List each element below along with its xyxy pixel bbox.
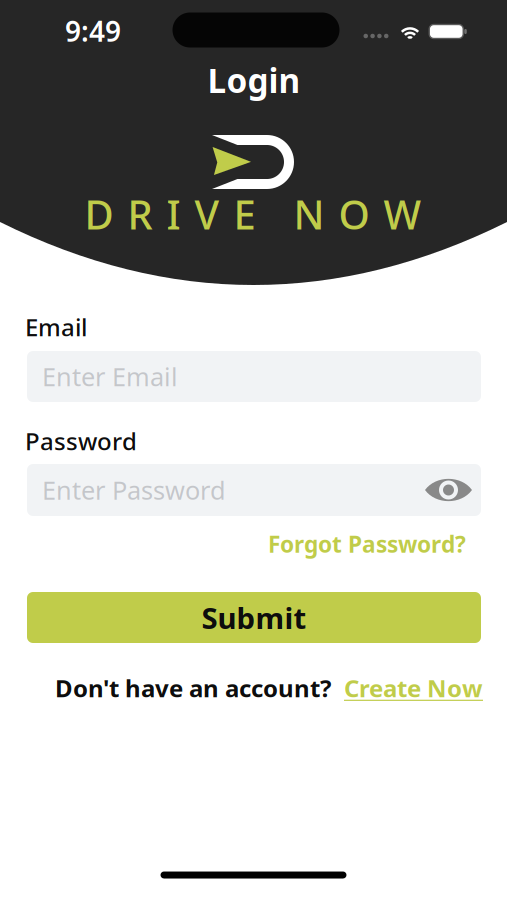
button[interactable]: Show password	[416, 464, 481, 516]
staticText: Enter Password	[42, 473, 226, 507]
button[interactable]: Forgot Password?	[27, 529, 466, 559]
staticText: DRIVE NOW	[84, 187, 421, 240]
staticText: Password	[25, 425, 137, 457]
staticText: 9:49	[65, 12, 121, 50]
staticText: Forgot Password?	[268, 529, 466, 559]
staticText: Don't have an account?	[55, 672, 331, 704]
staticText: Submit	[201, 598, 306, 637]
button[interactable]: Login	[174, 62, 334, 98]
staticText: Login	[207, 58, 300, 102]
button[interactable]: Submit	[27, 592, 481, 643]
staticText: Enter Email	[42, 360, 178, 393]
staticText: Email	[25, 311, 87, 343]
staticText: Create Now	[344, 672, 483, 704]
button[interactable]: Create Now	[344, 674, 504, 702]
